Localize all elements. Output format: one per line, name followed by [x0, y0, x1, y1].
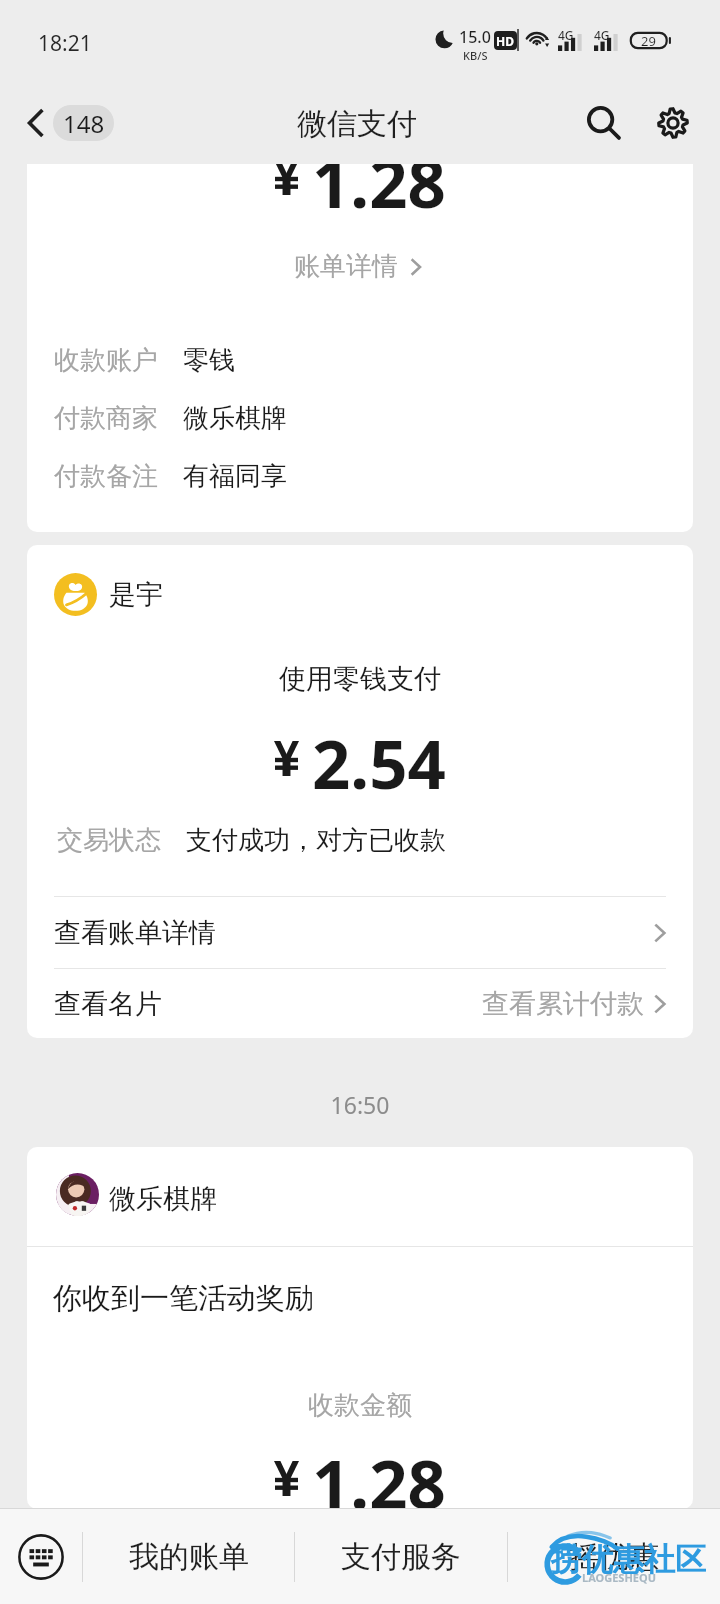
- button[interactable]: 查看账单详情: [27, 897, 693, 968]
- staticText: 付款备注: [54, 460, 158, 493]
- button[interactable]: Settings: [650, 100, 696, 146]
- staticText: 15.0: [459, 26, 491, 48]
- staticText: 收款金额: [27, 1389, 693, 1422]
- staticText: 4G: [594, 27, 610, 43]
- staticText: 零钱: [183, 344, 235, 377]
- button[interactable]: Keyboard: [0, 1509, 82, 1604]
- staticText: 1.28: [312, 164, 446, 227]
- staticText: 微乐棋牌: [109, 1182, 217, 1216]
- staticText: 查看累计付款: [482, 987, 644, 1021]
- button[interactable]: 支付服务: [295, 1509, 507, 1604]
- staticText: 收款账户: [54, 344, 158, 377]
- button[interactable]: 微乐棋牌: [56, 1173, 217, 1216]
- staticText: 有福同享: [183, 460, 287, 493]
- button[interactable]: 账单详情: [282, 243, 438, 290]
- staticText: 交易状态: [57, 824, 161, 857]
- staticText: 2.54: [312, 717, 446, 808]
- staticText: HD: [496, 33, 514, 49]
- staticText: 1.28: [312, 1437, 446, 1509]
- staticText: 是宇: [109, 578, 163, 612]
- staticText: 付款商家: [54, 402, 158, 435]
- button[interactable]: 1.28: [27, 164, 693, 532]
- staticText: 账单详情: [294, 250, 398, 283]
- button[interactable]: 微乐棋牌: [27, 1147, 693, 1509]
- button[interactable]: Search: [581, 100, 627, 146]
- staticText: 16:50: [0, 1089, 720, 1120]
- staticText: 微乐棋牌: [183, 402, 287, 435]
- button[interactable]: 是宇: [27, 545, 693, 1038]
- staticText: 支付服务: [341, 1538, 461, 1576]
- staticText: 支付成功，对方已收款: [186, 824, 446, 857]
- staticText: 查看名片: [54, 987, 162, 1021]
- staticText: 摇优惠: [569, 1538, 659, 1576]
- staticText: 微信支付: [297, 105, 417, 143]
- staticText: 4G: [558, 27, 574, 43]
- staticText: LAOGESHEQU: [582, 1570, 657, 1585]
- staticText: 148: [63, 107, 105, 140]
- staticText: 查看账单详情: [54, 916, 216, 950]
- staticText: 29: [641, 32, 656, 49]
- staticText: 捞优惠社区: [551, 1540, 706, 1579]
- staticText: 你收到一笔活动奖励: [53, 1280, 314, 1317]
- other: Back: [19, 108, 49, 138]
- staticText: 18:21: [38, 29, 92, 58]
- staticText: 我的账单: [129, 1538, 249, 1576]
- staticText: 使用零钱支付: [27, 662, 693, 696]
- staticText: KB/S: [463, 48, 488, 63]
- button[interactable]: Back: [19, 97, 114, 149]
- button[interactable]: 我的账单: [83, 1509, 294, 1604]
- button[interactable]: 摇优惠: [508, 1509, 720, 1604]
- button[interactable]: 查看名片: [27, 969, 693, 1038]
